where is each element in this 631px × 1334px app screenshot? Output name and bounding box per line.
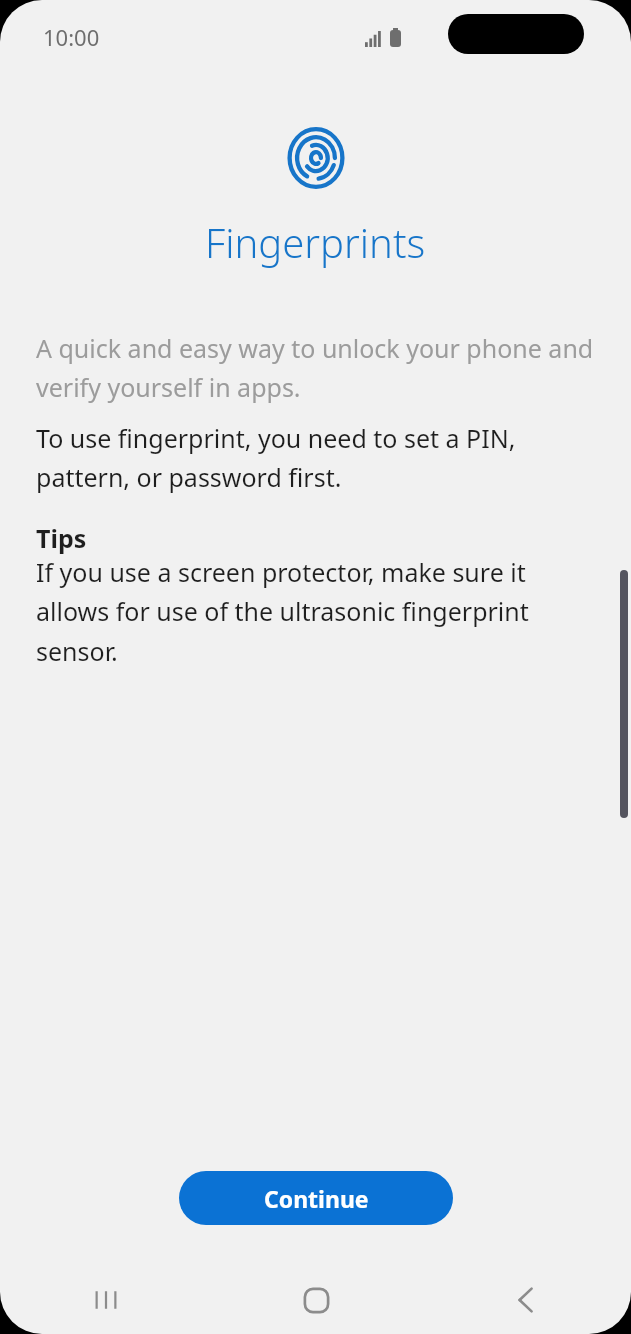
button[interactable]: Back — [421, 1266, 631, 1334]
staticText: Tips — [36, 521, 87, 555]
button[interactable]: Recent apps — [0, 1266, 211, 1334]
button[interactable]: Home — [211, 1266, 421, 1334]
staticText: If you use a screen protector, make sure… — [36, 555, 595, 669]
staticText: To use fingerprint, you need to set a PI… — [36, 421, 595, 495]
staticText: 10:00 — [43, 22, 100, 52]
staticText: Fingerprints — [205, 215, 426, 269]
staticText: Continue — [264, 1183, 369, 1214]
button[interactable]: Continue — [179, 1171, 453, 1225]
staticText: A quick and easy way to unlock your phon… — [36, 331, 595, 405]
